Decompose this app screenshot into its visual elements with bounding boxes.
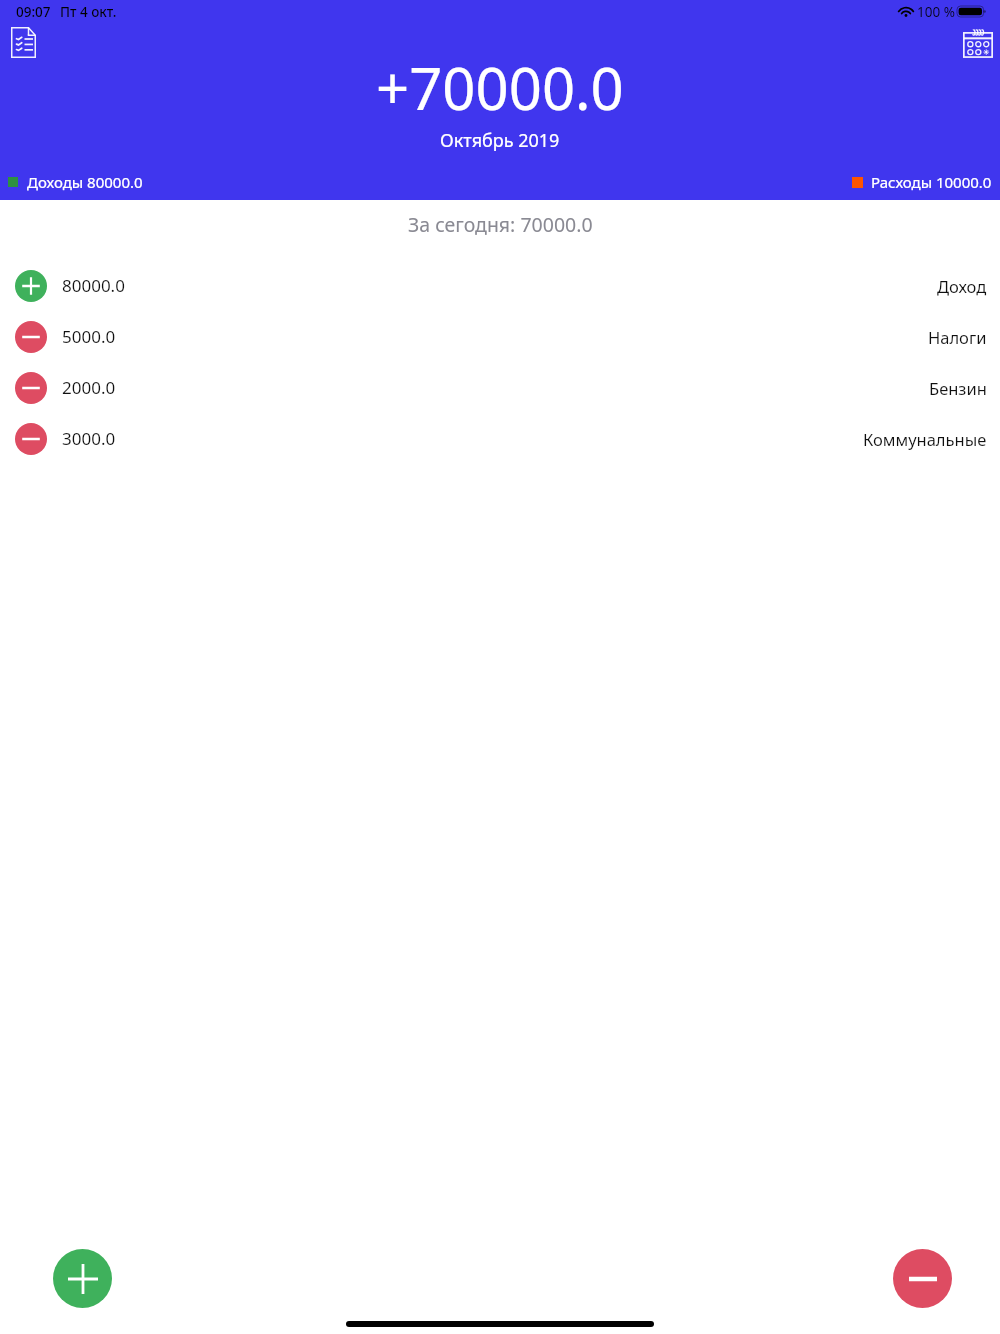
staticText: За сегодня: 70000.0 [408, 211, 593, 238]
staticText: +70000.0 [376, 48, 624, 127]
staticText: Расходы 10000.0 [871, 172, 992, 192]
button[interactable]: 2000.0 [0, 362, 1000, 413]
staticText: Октябрь 2019 [440, 128, 560, 153]
staticText: Коммунальные [863, 428, 987, 450]
staticText: 09:07 [16, 3, 51, 21]
button[interactable]: 80000.0 [0, 260, 1000, 311]
staticText: 80000.0 [62, 274, 125, 297]
button[interactable]: 5000.0 [0, 311, 1000, 362]
button[interactable]: Добавить расход [893, 1249, 952, 1308]
staticText: Доход [937, 275, 987, 297]
staticText: Пт 4 окт. [60, 3, 117, 21]
button[interactable]: Календарь [959, 24, 995, 60]
button[interactable]: 3000.0 [0, 413, 1000, 464]
staticText: 5000.0 [62, 325, 116, 348]
button[interactable]: Добавить доход [53, 1249, 112, 1308]
staticText: Налоги [928, 326, 987, 348]
button[interactable]: Отчёты [5, 24, 41, 60]
staticText: Доходы 80000.0 [27, 172, 143, 192]
staticText: 100 % [917, 3, 955, 21]
staticText: Бензин [929, 377, 987, 399]
staticText: 3000.0 [62, 427, 116, 450]
staticText: 2000.0 [62, 376, 116, 399]
